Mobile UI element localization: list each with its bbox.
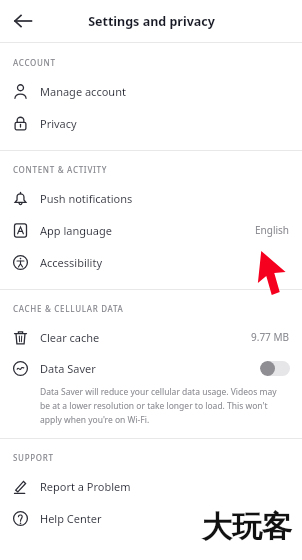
staticText: be at a lower resolution or take longer … (40, 400, 268, 412)
staticText: Manage account (40, 84, 126, 99)
staticText: Clear cache (40, 330, 100, 345)
button[interactable]: Clear cache (0, 321, 302, 353)
button[interactable]: Data Saver toggle (260, 361, 290, 376)
staticText: Help Center (40, 511, 102, 526)
button[interactable]: Manage account (0, 75, 302, 107)
button[interactable]: Privacy (0, 107, 302, 139)
staticText: 大玩客 (202, 508, 292, 546)
staticText: App language (40, 223, 112, 238)
button[interactable]: Accessibility (0, 246, 302, 278)
staticText: apply when you're on Wi-Fi. (40, 414, 150, 426)
staticText: CACHE & CELLULAR DATA (13, 303, 124, 314)
button[interactable]: Help Center (0, 502, 302, 534)
staticText: ACCOUNT (13, 57, 56, 68)
button[interactable]: Push notifications (0, 182, 302, 214)
staticText: 9.77 MB (251, 330, 290, 344)
staticText: Push notifications (40, 191, 133, 206)
button[interactable]: Data Saver (0, 353, 302, 383)
staticText: Accessibility (40, 255, 103, 270)
staticText: SUPPORT (13, 452, 54, 463)
staticText: English (255, 223, 290, 237)
staticText: Settings and privacy (88, 13, 215, 30)
button[interactable]: App language (0, 214, 302, 246)
staticText: Report a Problem (40, 479, 131, 494)
staticText: Data Saver (40, 361, 96, 376)
staticText: Data Saver will reduce your cellular dat… (40, 386, 277, 398)
button[interactable]: Report a Problem (0, 470, 302, 502)
staticText: CONTENT & ACTIVITY (13, 164, 108, 175)
staticText: Privacy (40, 116, 77, 131)
button[interactable]: Back (6, 4, 40, 38)
